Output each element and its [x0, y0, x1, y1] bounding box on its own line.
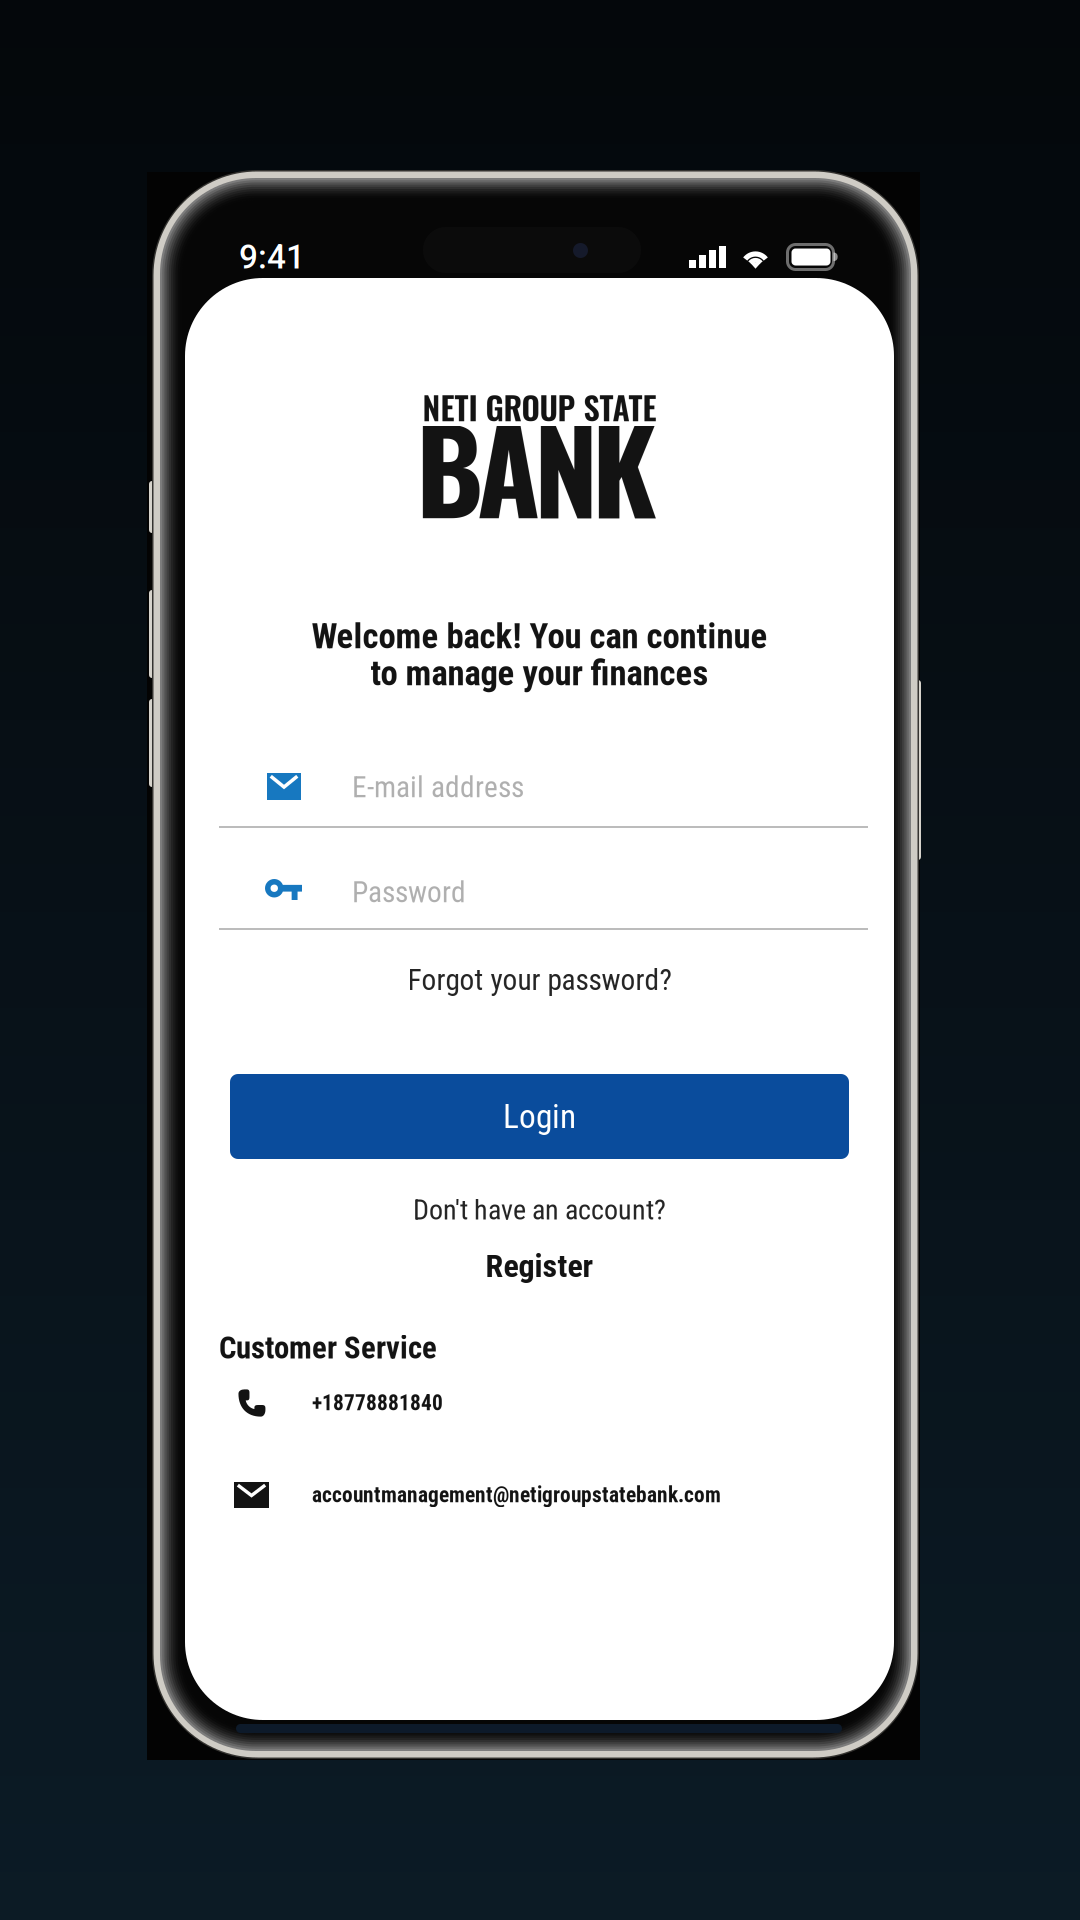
- staticText: accountmanagement@netigroupstatebank.com: [312, 1482, 721, 1507]
- button[interactable]: Login: [230, 1074, 849, 1159]
- staticText: E-mail address: [352, 770, 524, 804]
- button[interactable]: Don't have an account?: [369, 1193, 709, 1283]
- button[interactable]: +18778881840: [185, 1378, 785, 1428]
- staticText: Don't have an account?: [413, 1194, 666, 1226]
- staticText: 9:41: [239, 237, 305, 277]
- staticText: to manage your finances: [370, 653, 708, 694]
- staticText: NETI GROUP STATE: [422, 383, 656, 430]
- staticText: Password: [352, 875, 466, 909]
- staticText: Forgot your password?: [407, 963, 671, 997]
- staticText: Register: [485, 1247, 593, 1285]
- staticText: Login: [503, 1097, 576, 1136]
- staticText: +18778881840: [312, 1390, 443, 1415]
- button[interactable]: Forgot your password?: [389, 956, 689, 1004]
- staticText: BANK: [416, 382, 657, 552]
- staticText: Customer Service: [219, 1330, 437, 1366]
- staticText: Welcome back! You can continue: [311, 616, 767, 657]
- button[interactable]: accountmanagement@netigroupstatebank.com: [185, 1470, 865, 1520]
